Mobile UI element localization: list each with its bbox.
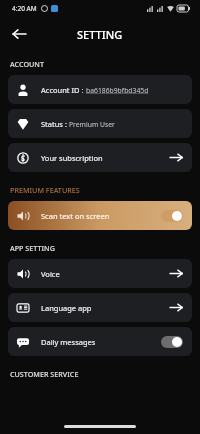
staticText: ACCOUNT <box>10 59 44 69</box>
staticText: ba6186b9bfbd345d <box>86 86 149 95</box>
button[interactable]: Back <box>6 21 32 47</box>
button[interactable]: Status : <box>8 109 192 138</box>
button[interactable]: Scan text on screen <box>8 201 192 230</box>
button[interactable]: Language app <box>8 293 192 322</box>
staticText: APP SETTING <box>10 243 55 253</box>
button[interactable]: Toggle <box>161 336 183 348</box>
button[interactable]: Voice <box>8 259 192 288</box>
other: Open <box>170 151 183 164</box>
button[interactable]: Daily messages <box>8 327 192 356</box>
staticText: CUSTOMER SERVICE <box>10 369 79 379</box>
button[interactable]: Toggle <box>161 210 183 222</box>
staticText: Your subscription <box>41 153 103 163</box>
staticText: Daily messages <box>41 337 96 347</box>
staticText: SETTING <box>77 27 123 42</box>
staticText: Voice <box>41 269 60 279</box>
staticText: Account ID : <box>41 85 86 95</box>
staticText: Status : <box>41 119 69 129</box>
staticText: Language app <box>41 303 92 313</box>
staticText: Scan text on screen <box>41 211 110 221</box>
other: Open <box>170 267 183 280</box>
button[interactable]: Account ID : <box>8 75 192 104</box>
staticText: PREMIUM FEATURES <box>10 185 80 195</box>
other: Open <box>170 301 183 314</box>
staticText: 4:20 AM <box>12 4 37 13</box>
button[interactable]: Your subscription <box>8 143 192 172</box>
staticText: Premium User <box>69 120 115 129</box>
